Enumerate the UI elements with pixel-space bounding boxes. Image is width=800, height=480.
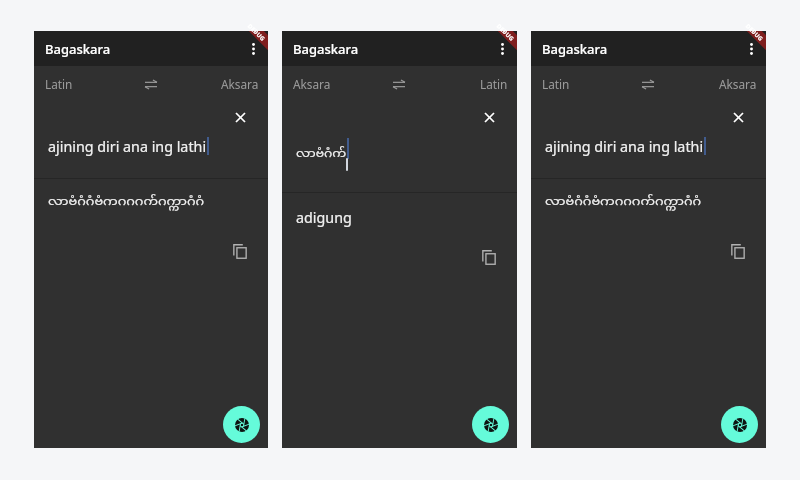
button[interactable]: Clear text — [724, 103, 752, 131]
button[interactable]: Latin — [34, 66, 138, 101]
button[interactable]: Latin — [412, 66, 517, 101]
staticText: Bagaskara — [45, 40, 111, 58]
staticText: Aksara — [293, 76, 331, 92]
button[interactable]: Aksara — [282, 66, 386, 101]
button[interactable]: More options — [487, 31, 517, 66]
button[interactable]: Copy to clipboard — [226, 237, 254, 265]
staticText: Aksara — [719, 76, 757, 92]
button[interactable]: Swap languages — [386, 71, 412, 97]
staticText: ajining diri ana ing lathi — [48, 137, 207, 156]
button[interactable]: Swap languages — [635, 71, 661, 97]
staticText: Aksara — [221, 76, 259, 92]
staticText: လာဗံဂံက် — [296, 146, 347, 163]
button[interactable]: More options — [238, 31, 268, 66]
staticText: Bagaskara — [293, 40, 359, 58]
button[interactable]: Copy to clipboard — [724, 237, 752, 265]
staticText: adigung — [296, 208, 352, 227]
button[interactable]: Copy to clipboard — [475, 243, 503, 271]
staticText: လာဗံဂံဂံဗံဂာဂဂဂက်ဂက္ကာဂံဂံ — [48, 193, 205, 211]
button[interactable]: Swap languages — [138, 71, 164, 97]
button[interactable]: Aksara — [164, 66, 268, 101]
button[interactable]: Aksara — [661, 66, 766, 101]
button[interactable]: Scan text with camera — [721, 406, 758, 443]
button[interactable]: Scan text with camera — [472, 406, 509, 443]
button[interactable]: Latin — [531, 66, 635, 101]
staticText: Bagaskara — [542, 40, 608, 58]
button[interactable]: Clear text — [226, 103, 254, 131]
staticText: Latin — [542, 76, 570, 92]
staticText: ajining diri ana ing lathi — [545, 137, 704, 156]
staticText: Latin — [480, 76, 508, 92]
button[interactable]: Scan text with camera — [223, 406, 260, 443]
button[interactable]: Clear text — [475, 103, 503, 131]
staticText: Latin — [45, 76, 73, 92]
staticText: လာဗံဂံဂံဗံဂာဂဂဂက်ဂက္ကာဂံဂံ — [545, 193, 702, 211]
button[interactable]: More options — [736, 31, 766, 66]
